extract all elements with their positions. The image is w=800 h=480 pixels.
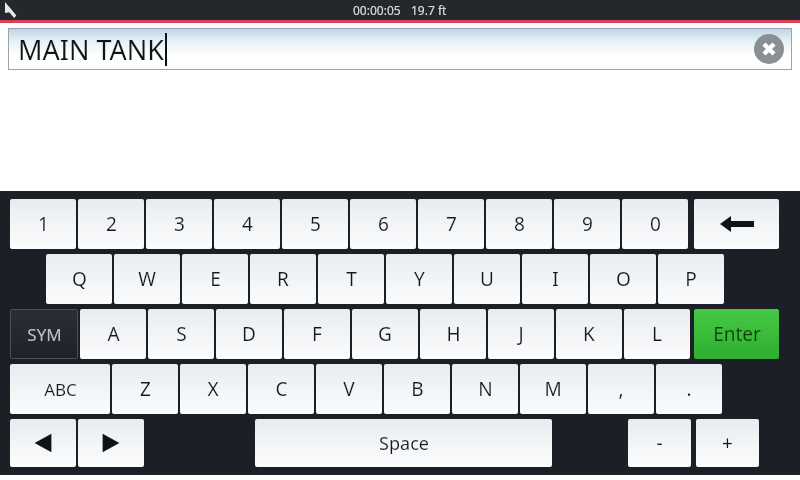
- staticText: MAIN TANK: [18, 31, 165, 68]
- staticText: Q: [72, 266, 87, 292]
- staticText: 00:00:05: [353, 2, 401, 18]
- button[interactable]: 0: [622, 199, 688, 249]
- button[interactable]: 6: [350, 199, 416, 249]
- button[interactable]: X: [180, 364, 246, 414]
- staticText: N: [478, 376, 493, 402]
- button[interactable]: Space: [255, 419, 552, 467]
- button[interactable]: G: [352, 309, 418, 359]
- staticText: Space: [379, 431, 429, 456]
- staticText: S: [176, 321, 187, 347]
- button[interactable]: J: [488, 309, 554, 359]
- staticText: 1: [38, 211, 49, 237]
- staticText: 8: [514, 211, 525, 237]
- staticText: 6: [378, 211, 389, 237]
- button[interactable]: 3: [146, 199, 212, 249]
- button[interactable]: Cursor right: [78, 419, 144, 467]
- button[interactable]: Clear text: [754, 34, 784, 64]
- button[interactable]: -: [628, 419, 691, 467]
- button[interactable]: N: [452, 364, 518, 414]
- button[interactable]: 5: [282, 199, 348, 249]
- staticText: 0: [650, 211, 661, 237]
- staticText: 5: [310, 211, 321, 237]
- staticText: F: [312, 321, 322, 347]
- staticText: U: [480, 266, 494, 292]
- button[interactable]: 7: [418, 199, 484, 249]
- button[interactable]: .: [656, 364, 722, 414]
- button[interactable]: ,: [588, 364, 654, 414]
- staticText: M: [544, 376, 562, 402]
- staticText: Z: [140, 376, 151, 402]
- button[interactable]: M: [520, 364, 586, 414]
- staticText: W: [138, 266, 156, 292]
- staticText: Enter: [713, 321, 761, 347]
- staticText: 9: [582, 211, 593, 237]
- button[interactable]: O: [590, 254, 656, 304]
- staticText: X: [207, 376, 219, 402]
- staticText: SYM: [27, 323, 62, 346]
- staticText: 7: [446, 211, 457, 237]
- staticText: H: [446, 321, 461, 347]
- staticText: E: [210, 266, 221, 292]
- staticText: -: [656, 430, 663, 456]
- staticText: 3: [174, 211, 185, 237]
- staticText: ,: [618, 376, 624, 402]
- staticText: C: [275, 376, 288, 402]
- button[interactable]: Q: [46, 254, 112, 304]
- button[interactable]: 1: [10, 199, 76, 249]
- button[interactable]: S: [148, 309, 214, 359]
- staticText: 19.7 ft: [411, 2, 447, 18]
- button[interactable]: R: [250, 254, 316, 304]
- button[interactable]: +: [696, 419, 759, 467]
- button[interactable]: E: [182, 254, 248, 304]
- staticText: 4: [242, 211, 253, 237]
- button[interactable]: T: [318, 254, 384, 304]
- button[interactable]: B: [384, 364, 450, 414]
- button[interactable]: ABC: [10, 364, 110, 414]
- staticText: B: [411, 376, 424, 402]
- button[interactable]: I: [522, 254, 588, 304]
- staticText: Y: [414, 266, 425, 292]
- button[interactable]: MAIN TANK: [8, 28, 792, 70]
- staticText: G: [378, 321, 392, 347]
- staticText: R: [277, 266, 289, 292]
- staticText: ABC: [44, 378, 77, 401]
- button[interactable]: 2: [78, 199, 144, 249]
- button[interactable]: P: [658, 254, 724, 304]
- button[interactable]: V: [316, 364, 382, 414]
- staticText: D: [242, 321, 256, 347]
- button[interactable]: Cursor left: [10, 419, 76, 467]
- staticText: L: [652, 321, 662, 347]
- staticText: A: [107, 321, 120, 347]
- staticText: K: [583, 321, 595, 347]
- button[interactable]: D: [216, 309, 282, 359]
- button[interactable]: 8: [486, 199, 552, 249]
- button[interactable]: F: [284, 309, 350, 359]
- staticText: J: [518, 321, 524, 347]
- button[interactable]: W: [114, 254, 180, 304]
- button[interactable]: Y: [386, 254, 452, 304]
- button[interactable]: 4: [214, 199, 280, 249]
- staticText: I: [552, 266, 559, 292]
- button[interactable]: K: [556, 309, 622, 359]
- staticText: 2: [106, 211, 117, 237]
- button[interactable]: A: [80, 309, 146, 359]
- staticText: P: [685, 266, 697, 292]
- staticText: T: [346, 266, 357, 292]
- staticText: O: [616, 266, 631, 292]
- button[interactable]: SYM: [10, 309, 78, 359]
- staticText: .: [686, 376, 692, 402]
- button[interactable]: C: [248, 364, 314, 414]
- button[interactable]: H: [420, 309, 486, 359]
- staticText: +: [722, 430, 733, 456]
- button[interactable]: Backspace: [694, 199, 779, 249]
- button[interactable]: Z: [112, 364, 178, 414]
- button[interactable]: L: [624, 309, 690, 359]
- button[interactable]: U: [454, 254, 520, 304]
- button[interactable]: Enter: [694, 309, 779, 359]
- staticText: V: [343, 376, 355, 402]
- button[interactable]: 9: [554, 199, 620, 249]
